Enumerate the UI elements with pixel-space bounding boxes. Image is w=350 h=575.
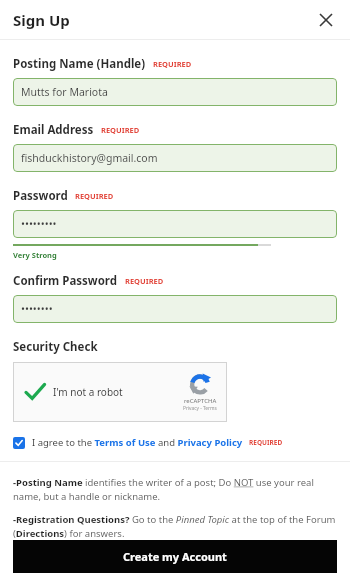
staticText: I'm not a robot <box>53 385 123 399</box>
button[interactable]: I agree to the Terms of Use and Privacy … <box>13 436 337 449</box>
staticText: •••••••• <box>21 302 53 316</box>
staticText: Privacy - Terms <box>183 405 217 412</box>
staticText: Very Strong <box>13 250 57 260</box>
staticText: REQUIRED <box>153 59 192 69</box>
staticText: Security Check <box>13 339 98 355</box>
button[interactable]: fishduckhistory@gmail.com <box>13 144 337 172</box>
staticText: REQUIRED <box>101 125 140 135</box>
staticText: Sign Up <box>13 10 70 30</box>
staticText: Confirm Password <box>13 273 118 289</box>
staticText: -Posting Name identifies the writer of a… <box>13 476 337 503</box>
staticText: fishduckhistory@gmail.com <box>21 151 158 165</box>
staticText: Mutts for Mariota <box>21 85 108 99</box>
staticText: REQUIRED <box>249 438 283 447</box>
staticText: Create my Account <box>123 549 227 564</box>
button[interactable]: •••••••• <box>13 295 337 323</box>
button[interactable]: ••••••••• <box>13 210 337 238</box>
staticText: -Registration Questions? Go to the Pinne… <box>13 513 337 540</box>
staticText: reCAPTCHA <box>184 397 217 405</box>
button[interactable]: Mutts for Mariota <box>13 78 337 106</box>
staticText: Password <box>13 188 68 204</box>
button[interactable]: Create my Account <box>13 540 337 573</box>
staticText: Posting Name (Handle) <box>13 56 146 72</box>
staticText: I agree to the Terms of Use and Privacy … <box>32 436 243 449</box>
staticText: REQUIRED <box>75 191 114 201</box>
staticText: REQUIRED <box>125 276 164 286</box>
staticText: Email Address <box>13 122 94 138</box>
staticText: ••••••••• <box>21 217 57 231</box>
button[interactable]: Close <box>312 6 340 34</box>
button[interactable]: I'm not a robot <box>13 362 227 422</box>
